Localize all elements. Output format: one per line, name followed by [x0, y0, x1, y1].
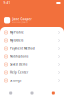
- button[interactable]: My Orders: [0, 36, 64, 44]
- staticText: Notifications: [10, 55, 28, 58]
- button[interactable]: Saved Items: [0, 60, 64, 68]
- staticText: My Profile: [10, 31, 24, 34]
- staticText: Help Center: [10, 71, 28, 74]
- staticText: Payment Method: [10, 47, 35, 50]
- staticText: Saved Items: [10, 63, 27, 66]
- button[interactable]: Profile: [43, 86, 64, 100]
- staticText: 9:41: [3, 1, 10, 5]
- staticText: Settings: [10, 79, 21, 82]
- button[interactable]: My Profile: [0, 28, 64, 36]
- staticText: My Orders: [10, 39, 23, 42]
- staticText: jane.cooper@mail.com: [12, 21, 27, 23]
- button[interactable]: Home: [0, 86, 21, 100]
- button[interactable]: Settings: [0, 76, 64, 84]
- button[interactable]: Help Center: [0, 68, 64, 76]
- staticText: Jane Cooper: [12, 17, 31, 21]
- button[interactable]: Payment Method: [0, 44, 64, 52]
- button[interactable]: Notifications: [0, 52, 64, 60]
- button[interactable]: Search: [21, 86, 43, 100]
